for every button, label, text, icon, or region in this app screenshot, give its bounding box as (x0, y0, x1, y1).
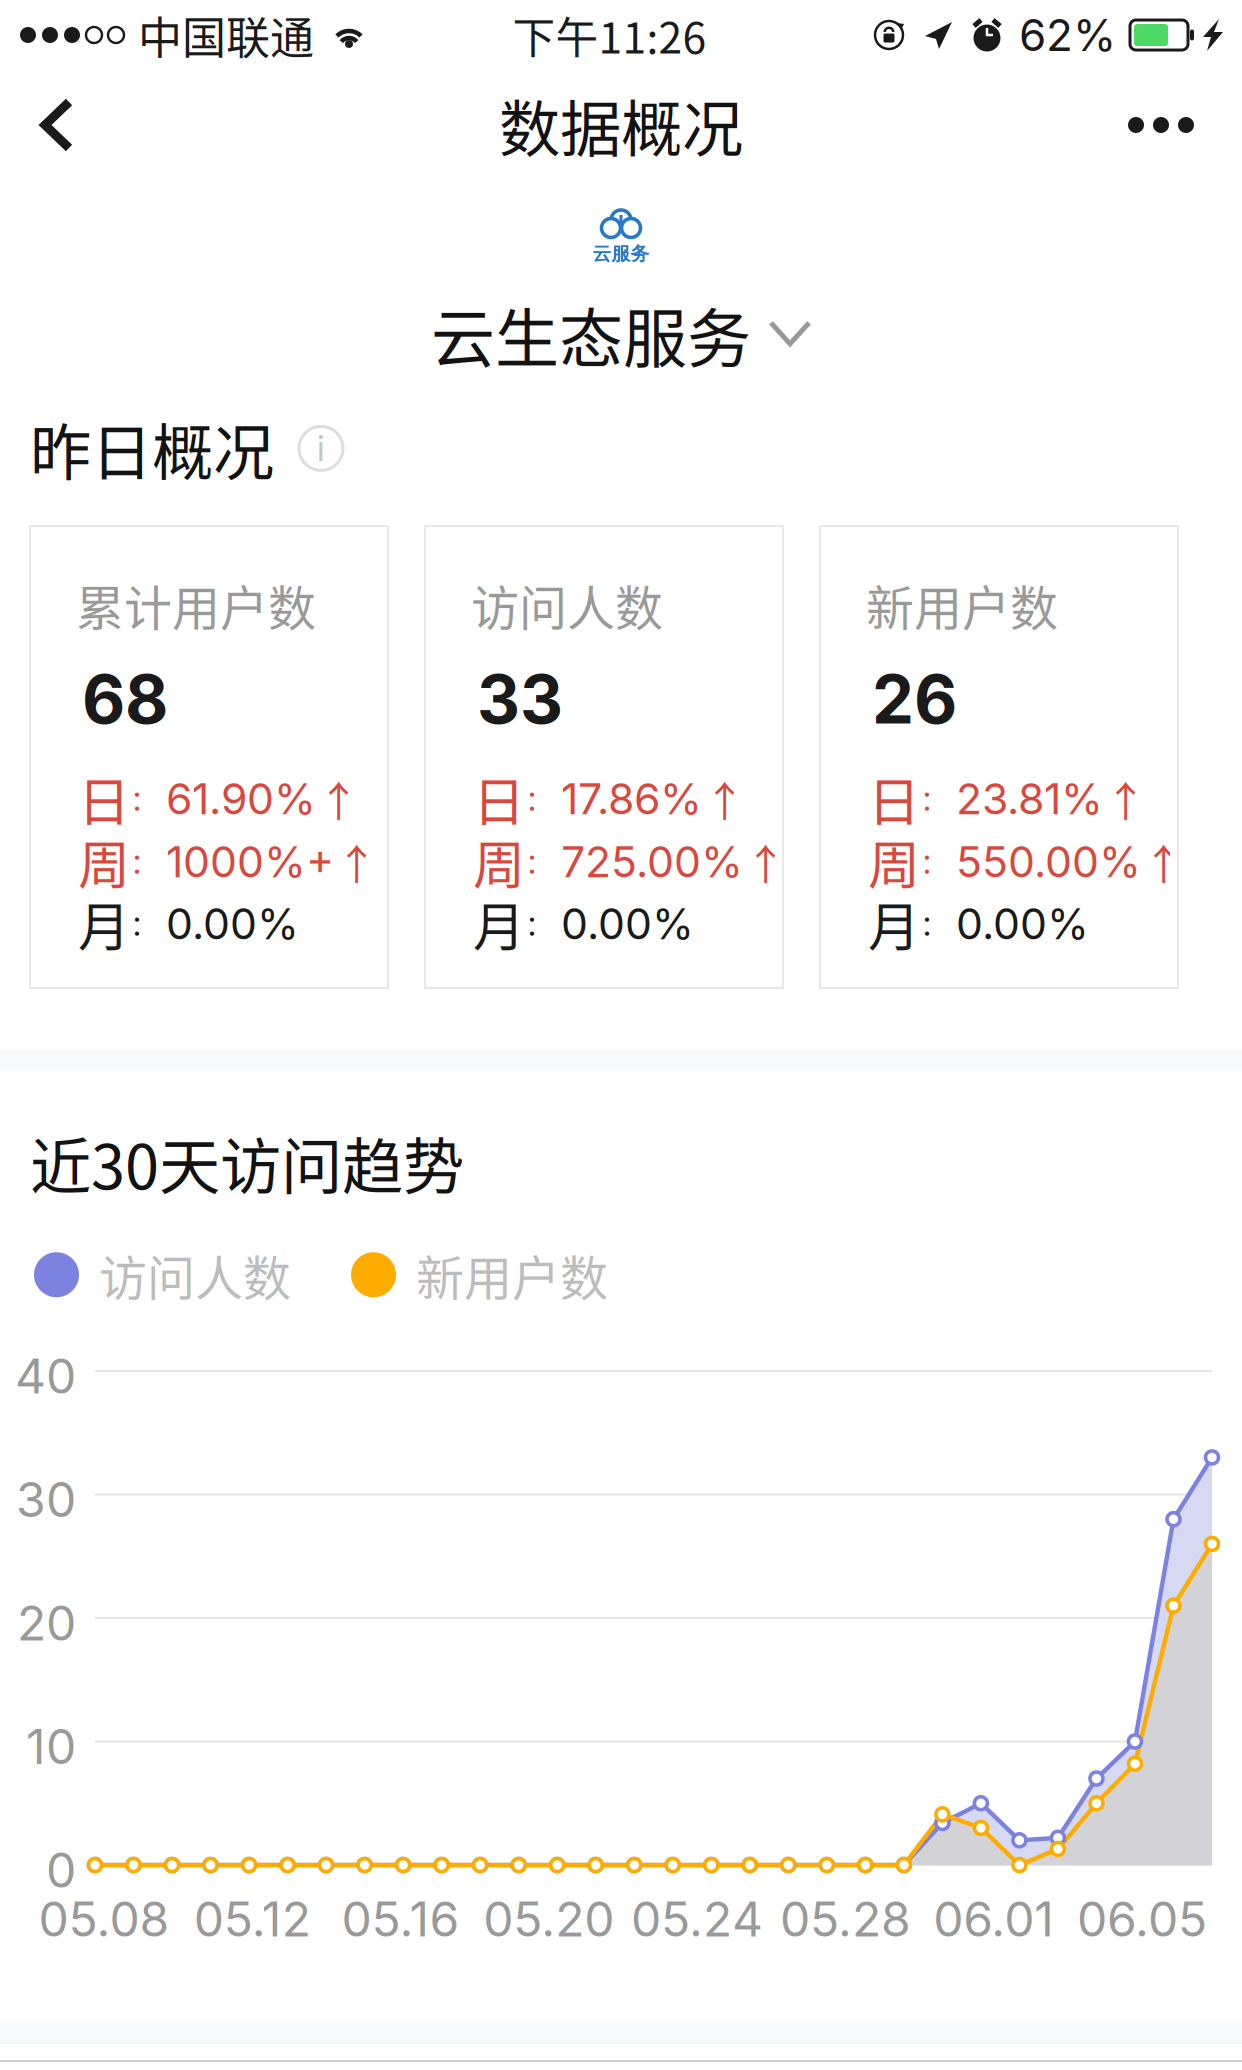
button[interactable]: 云生态服务 (415, 277, 827, 390)
staticText: 日 (473, 761, 525, 836)
staticText: 550.00% (956, 836, 1141, 887)
staticText: ↑ (318, 769, 359, 829)
staticText: 下午11:26 (512, 4, 706, 66)
staticText: 17.86% (561, 773, 702, 824)
staticText: 05.24 (631, 1890, 763, 1948)
staticText: 40 (15, 1347, 76, 1405)
staticText: 月 (473, 886, 525, 961)
staticText: 周 (868, 824, 920, 899)
staticText: ： (525, 778, 553, 819)
staticText: 日 (78, 761, 130, 836)
staticText: 新用户数 (866, 570, 1058, 639)
staticText: ： (920, 903, 948, 944)
staticText: 61.90% (166, 773, 316, 824)
staticText: 05.20 (483, 1890, 614, 1948)
staticText: ↑ (1105, 769, 1146, 829)
staticText: 中国联通 (138, 3, 314, 67)
staticText: 05.28 (780, 1890, 911, 1948)
staticText: ： (130, 778, 158, 819)
staticText: 30 (16, 1470, 76, 1529)
staticText: ： (525, 841, 553, 882)
staticText: 20 (17, 1594, 76, 1652)
staticText: 05.08 (38, 1890, 169, 1948)
staticText: ↑ (745, 832, 786, 892)
staticText: 累计用户数 (76, 570, 316, 639)
staticText: 访问人数 (99, 1240, 291, 1309)
staticText: 725.00% (561, 836, 743, 887)
staticText: ： (920, 841, 948, 882)
staticText: i (317, 427, 325, 469)
staticText: 0 (46, 1841, 76, 1899)
staticText: 访问人数 (471, 570, 663, 639)
staticText: 0.00% (166, 898, 299, 949)
staticText: ↑ (704, 769, 745, 829)
button[interactable]: Back (0, 70, 104, 180)
staticText: 近30天访问趋势 (30, 1118, 464, 1207)
staticText: 云生态服务 (431, 287, 751, 380)
staticText: 月 (868, 886, 920, 961)
staticText: ： (130, 841, 158, 882)
staticText: 0.00% (956, 898, 1089, 949)
staticText: 68 (82, 659, 168, 740)
staticText: 周 (78, 824, 130, 899)
staticText: 10 (26, 1717, 76, 1776)
staticText: 05.16 (342, 1890, 460, 1948)
staticText: 06.01 (933, 1890, 1054, 1948)
staticText: 昨日概况 (30, 404, 274, 493)
staticText: ： (130, 903, 158, 944)
staticText: 06.05 (1077, 1890, 1207, 1948)
button[interactable]: Info (294, 421, 348, 475)
staticText: 周 (473, 824, 525, 899)
staticText: ↑ (1143, 832, 1184, 892)
staticText: 62% (1019, 8, 1116, 62)
staticText: 33 (477, 659, 563, 740)
staticText: 1000%+ (166, 836, 334, 887)
staticText: 05.12 (194, 1890, 311, 1948)
staticText: 数据概况 (499, 81, 743, 169)
staticText: 0.00% (561, 898, 694, 949)
staticText: 新用户数 (416, 1240, 608, 1309)
staticText: 月 (78, 886, 130, 961)
staticText: 26 (872, 659, 957, 740)
button[interactable]: More options (1088, 71, 1242, 179)
staticText: 日 (868, 761, 920, 836)
staticText: ↑ (336, 832, 377, 892)
staticText: 云服务 (592, 242, 649, 265)
staticText: ： (525, 903, 553, 944)
staticText: ： (920, 778, 948, 819)
staticText: 23.81% (956, 773, 1103, 824)
